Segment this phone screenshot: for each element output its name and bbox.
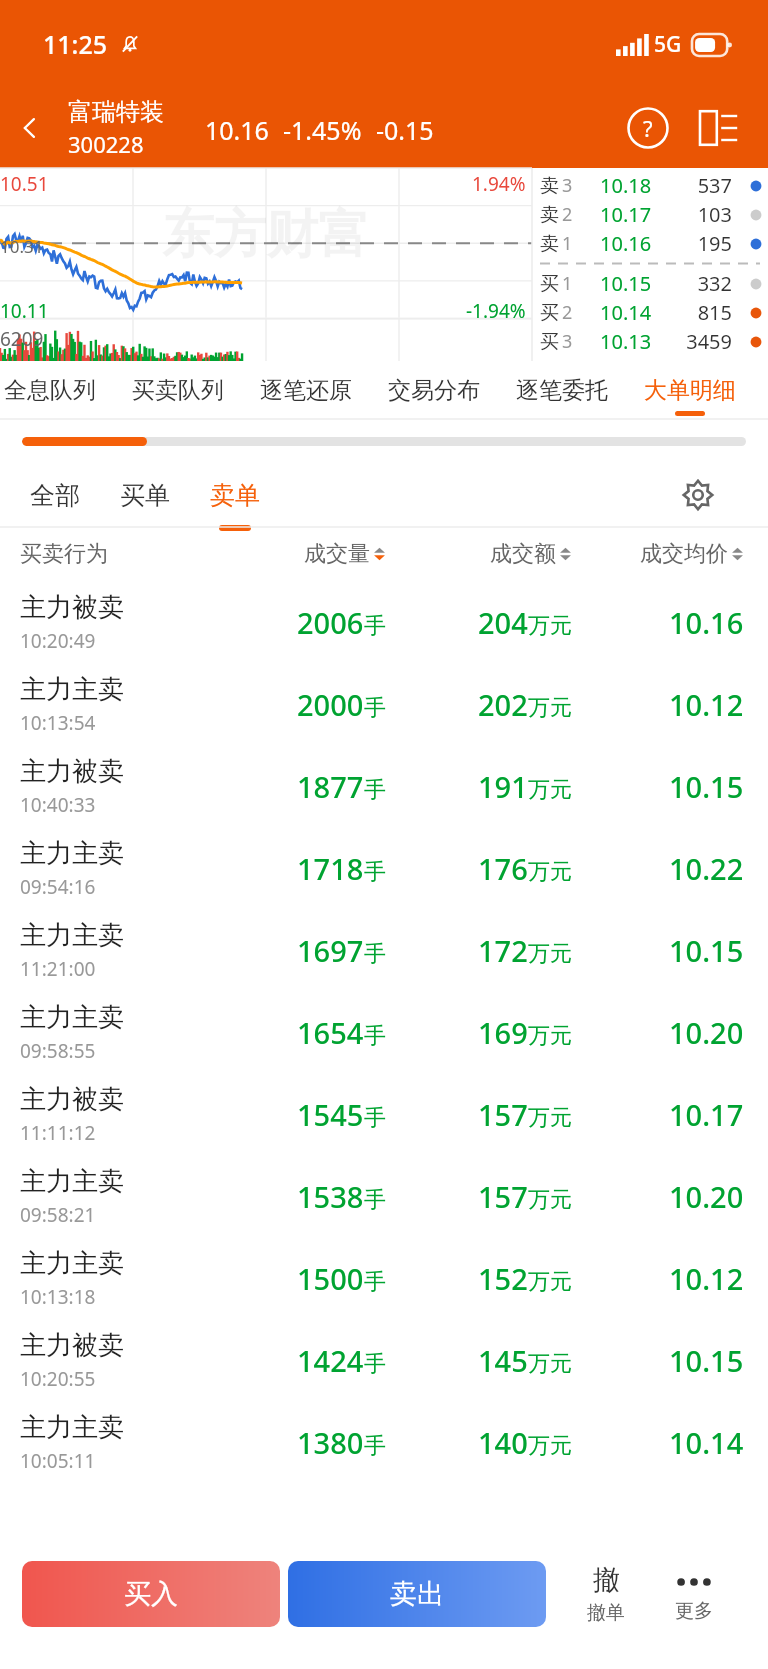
button[interactable]: 主力被卖	[0, 581, 768, 663]
button[interactable]: 全息队列	[0, 361, 114, 419]
button[interactable]: 卖	[532, 171, 768, 200]
button[interactable]: 主力被卖	[0, 745, 768, 827]
button[interactable]: 主力被卖	[0, 1319, 768, 1401]
button[interactable]: 买	[532, 298, 768, 327]
staticText: 卖出	[390, 1577, 444, 1611]
button[interactable]: 交易分布	[370, 361, 498, 419]
staticText: 537	[697, 172, 732, 199]
staticText: 手	[364, 1268, 386, 1296]
button[interactable]: 大单明细	[626, 361, 754, 419]
staticText: 主力主卖	[20, 673, 124, 706]
staticText: 手	[364, 1022, 386, 1050]
staticText: 手	[364, 940, 386, 968]
button[interactable]: 主力主卖	[0, 1401, 768, 1483]
staticText: 1	[562, 271, 573, 296]
button[interactable]: 卖单	[210, 480, 260, 511]
staticText: 204	[478, 603, 528, 642]
button[interactable]: 买入	[22, 1561, 280, 1627]
staticText: 10:13:54	[20, 710, 96, 736]
button[interactable]: 成交额	[386, 527, 572, 581]
staticText: 10.16	[600, 230, 652, 257]
button[interactable]: 撤	[562, 1563, 650, 1625]
button[interactable]: 成交均价	[572, 527, 768, 581]
staticText: 10.51	[0, 171, 49, 197]
staticText: -1.94%	[466, 298, 526, 324]
staticText: 全部	[30, 480, 80, 511]
staticText: 1380	[297, 1423, 364, 1462]
staticText: 5G	[654, 30, 682, 59]
staticText: ?	[643, 113, 653, 143]
staticText: 191	[478, 767, 528, 806]
staticText: 手	[364, 1350, 386, 1378]
staticText: 交易分布	[388, 376, 480, 405]
button[interactable]: 卖出	[288, 1561, 546, 1627]
button[interactable]: 买	[532, 327, 768, 356]
staticText: -1.45%	[283, 113, 362, 147]
staticText: 手	[364, 612, 386, 640]
button[interactable]: 卖	[532, 229, 768, 258]
button[interactable]: 主力主卖	[0, 909, 768, 991]
button[interactable]: 主力主卖	[0, 663, 768, 745]
staticText: 1545	[297, 1095, 364, 1134]
button[interactable]: 主力主卖	[0, 991, 768, 1073]
staticText: 145	[478, 1341, 528, 1380]
staticText: 1424	[297, 1341, 364, 1380]
staticText: 157	[478, 1177, 528, 1216]
staticText: 全息队列	[4, 376, 96, 405]
staticText: 6209	[0, 326, 44, 352]
button[interactable]: 卖	[532, 200, 768, 229]
staticText: 10.14	[669, 1423, 744, 1462]
staticText: 11:21:00	[20, 956, 96, 982]
staticText: 万元	[528, 1268, 572, 1296]
staticText: 10.13	[600, 328, 652, 355]
staticText: 10.18	[600, 172, 652, 199]
staticText: 万元	[528, 612, 572, 640]
staticText: 1877	[297, 767, 364, 806]
staticText: 手	[364, 694, 386, 722]
staticText: 10:20:55	[20, 1366, 96, 1392]
staticText: 主力主卖	[20, 1165, 124, 1198]
button[interactable]: 逐笔还原	[242, 361, 370, 419]
staticText: 主力主卖	[20, 837, 124, 870]
button[interactable]: 逐笔委托	[498, 361, 626, 419]
staticText: 172	[478, 931, 528, 970]
staticText: 10.31	[0, 235, 44, 258]
button[interactable]: 更多	[650, 1565, 738, 1623]
button[interactable]: Back	[0, 88, 60, 168]
button[interactable]: 买卖队列	[114, 361, 242, 419]
staticText: 2000	[297, 685, 364, 724]
staticText: 195	[697, 230, 732, 257]
button[interactable]: Settings	[676, 473, 720, 517]
staticText: 买	[540, 301, 559, 325]
button[interactable]: More	[692, 102, 744, 154]
button[interactable]: 成交量	[200, 527, 386, 581]
button[interactable]: Help	[624, 104, 672, 152]
staticText: 万元	[528, 1104, 572, 1132]
staticText: 撤	[593, 1563, 620, 1597]
staticText: 手	[364, 776, 386, 804]
button[interactable]: 主力主卖	[0, 1237, 768, 1319]
button[interactable]: 主力主卖	[0, 827, 768, 909]
staticText: 103	[697, 201, 732, 228]
staticText: 卖单	[210, 480, 260, 511]
staticText: 140	[478, 1423, 528, 1462]
staticText: 2	[562, 300, 573, 325]
button[interactable]: 买单	[120, 480, 170, 511]
staticText: 万元	[528, 1186, 572, 1214]
staticText: 万元	[528, 1350, 572, 1378]
staticText: 主力主卖	[20, 1001, 124, 1034]
staticText: 176	[478, 849, 528, 888]
button[interactable]: 主力主卖	[0, 1155, 768, 1237]
staticText: 10.14	[600, 299, 652, 326]
staticText: 10.22	[669, 849, 744, 888]
staticText: 09:58:21	[20, 1202, 96, 1228]
staticText: 3	[562, 329, 573, 354]
staticText: 1718	[297, 849, 364, 888]
staticText: 主力被卖	[20, 1329, 124, 1362]
staticText: -0.15	[376, 113, 434, 147]
button[interactable]: 买	[532, 269, 768, 298]
staticText: 10.15	[669, 1341, 744, 1380]
button[interactable]: 全部	[30, 480, 80, 511]
staticText: 10:20:49	[20, 628, 96, 654]
button[interactable]: 主力被卖	[0, 1073, 768, 1155]
